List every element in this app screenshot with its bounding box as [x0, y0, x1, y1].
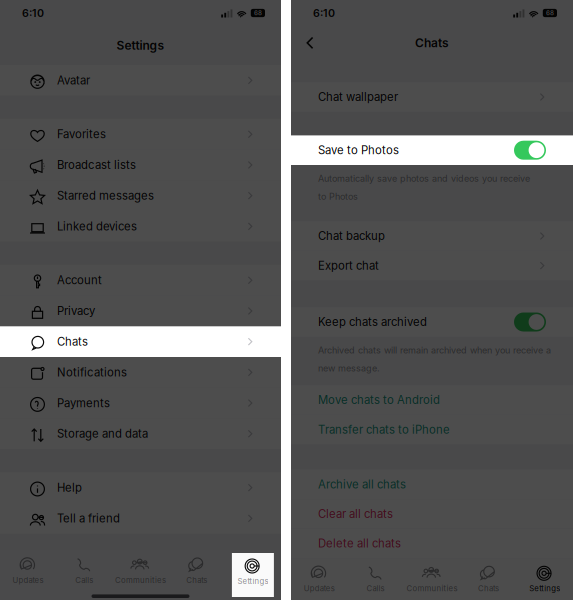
staticText: 6:10	[22, 6, 44, 19]
staticText: Communities	[406, 584, 457, 593]
button[interactable]: Save to Photos	[291, 135, 573, 165]
button[interactable]: Clear all chats	[291, 499, 573, 529]
button[interactable]: Communities	[404, 558, 460, 600]
button[interactable]: Favorites	[0, 119, 281, 150]
staticText: Chats	[57, 335, 88, 348]
staticText: Privacy	[57, 304, 95, 318]
button[interactable]: Delete all chats	[291, 529, 573, 558]
staticText: Starred messages	[57, 189, 154, 202]
staticText: Export chat	[318, 259, 379, 272]
staticText: Account	[57, 273, 102, 287]
staticText: Chats	[186, 575, 207, 585]
button[interactable]: Privacy	[0, 296, 281, 326]
button[interactable]: Starred messages	[0, 180, 281, 211]
staticText: Linked devices	[57, 219, 137, 233]
staticText: Settings	[529, 584, 560, 593]
button[interactable]: Back	[291, 27, 326, 58]
staticText: Delete all chats	[318, 537, 401, 550]
staticText: Settings	[237, 576, 268, 586]
button[interactable]: Broadcast lists	[0, 150, 281, 180]
button[interactable]: Updates	[291, 558, 347, 600]
button[interactable]: Transfer chats to iPhone	[291, 415, 573, 444]
button[interactable]: Export chat	[291, 251, 573, 280]
button[interactable]: Chats	[0, 326, 281, 357]
staticText: Archived chats will remain archived when…	[318, 345, 551, 356]
staticText: 68	[254, 9, 262, 17]
staticText: new message.	[318, 363, 380, 374]
staticText: Settings	[116, 38, 164, 53]
button[interactable]: Calls	[347, 558, 404, 600]
staticText: Payments	[57, 396, 110, 410]
staticText: Save to Photos	[318, 143, 399, 157]
staticText: Storage and data	[57, 427, 148, 441]
staticText: Keep chats archived	[318, 315, 427, 329]
button[interactable]: Communities	[112, 550, 169, 600]
staticText: Favorites	[57, 127, 106, 141]
staticText: Calls	[75, 575, 93, 585]
staticText: Chats	[415, 36, 449, 50]
staticText: Calls	[367, 584, 385, 593]
staticText: Communities	[115, 575, 166, 585]
button[interactable]: Move chats to Android	[291, 385, 573, 415]
staticText: Move chats to Android	[318, 393, 440, 407]
staticText: Chats	[478, 584, 499, 593]
staticText: 6:10	[313, 6, 335, 19]
staticText: Archive all chats	[318, 477, 406, 491]
staticText: Chat wallpaper	[318, 90, 398, 104]
button[interactable]: Notifications	[0, 357, 281, 388]
button[interactable]: Chats	[169, 550, 225, 600]
staticText: Updates	[304, 584, 335, 593]
staticText: Clear all chats	[318, 507, 393, 521]
button[interactable]: Account	[0, 265, 281, 296]
staticText: to Photos	[318, 191, 358, 202]
button[interactable]: Payments	[0, 388, 281, 418]
button[interactable]: Settings	[517, 558, 573, 600]
button[interactable]: Keep chats archived	[291, 307, 573, 337]
button[interactable]: Chat wallpaper	[291, 82, 573, 112]
button[interactable]: Storage and data	[0, 418, 281, 449]
staticText: Chat backup	[318, 229, 385, 243]
button[interactable]: Settings	[232, 553, 274, 597]
staticText: Help	[57, 481, 82, 494]
button[interactable]: Chats	[460, 558, 517, 600]
button[interactable]: Linked devices	[0, 211, 281, 242]
staticText: Tell a friend	[57, 511, 120, 525]
staticText: Broadcast lists	[57, 158, 136, 172]
button[interactable]: Help	[0, 472, 281, 503]
staticText: Notifications	[57, 365, 127, 379]
button[interactable]: Archive all chats	[291, 469, 573, 499]
staticText: Avatar	[57, 73, 90, 87]
staticText: Transfer chats to iPhone	[318, 423, 450, 436]
button[interactable]: Tell a friend	[0, 503, 281, 534]
button[interactable]: Chat backup	[291, 221, 573, 251]
button[interactable]: Avatar	[0, 65, 281, 96]
staticText: Updates	[13, 575, 44, 585]
staticText: 68	[546, 9, 554, 17]
button[interactable]: Updates	[0, 550, 56, 600]
staticText: Automatically save photos and videos you…	[318, 173, 530, 184]
button[interactable]: Calls	[56, 550, 112, 600]
